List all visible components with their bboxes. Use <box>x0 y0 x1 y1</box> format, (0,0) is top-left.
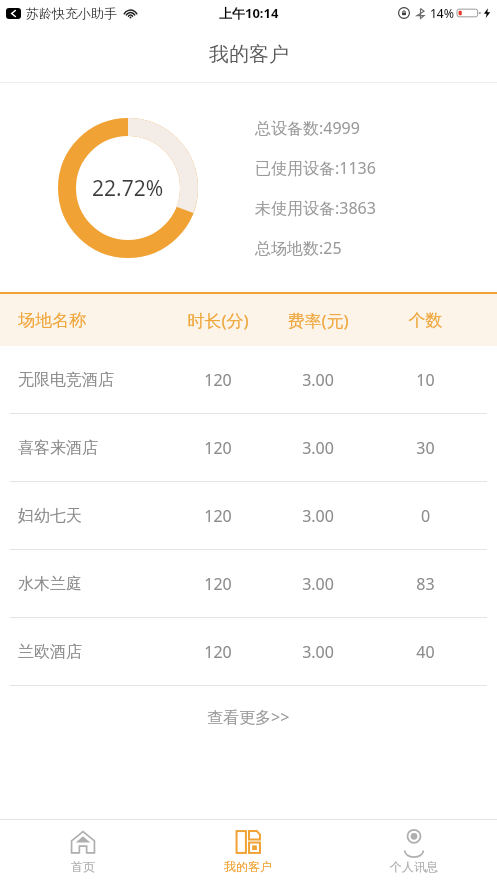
staticText: 喜客来酒店 <box>18 438 168 458</box>
button[interactable]: 兰欧酒店 <box>0 618 497 685</box>
button[interactable]: 查看更多>> <box>0 686 497 748</box>
staticText: 120 <box>168 369 268 391</box>
staticText: 时长(分) <box>168 309 268 332</box>
staticText: 未使用设备:3863 <box>255 197 376 219</box>
staticText: 妇幼七天 <box>18 506 168 526</box>
button[interactable]: 我的客户 <box>165 820 331 883</box>
staticText: 费率(元) <box>268 309 368 332</box>
button[interactable]: 首页 <box>0 820 165 883</box>
button[interactable]: 水木兰庭 <box>0 550 497 617</box>
staticText: 上午10:14 <box>219 4 279 22</box>
staticText: 我的客户 <box>209 42 289 67</box>
staticText: 场地名称 <box>18 310 168 331</box>
staticText: 120 <box>168 641 268 663</box>
button[interactable]: 喜客来酒店 <box>0 414 497 481</box>
staticText: 3.00 <box>268 505 368 527</box>
staticText: 兰欧酒店 <box>18 642 168 662</box>
staticText: 苏龄快充小助手 <box>26 5 117 21</box>
staticText: 水木兰庭 <box>18 574 168 594</box>
staticText: 我的客户 <box>224 859 272 874</box>
button[interactable]: 个人讯息 <box>331 820 497 883</box>
staticText: 总设备数:4999 <box>255 117 360 139</box>
staticText: 3.00 <box>268 369 368 391</box>
staticText: 120 <box>168 573 268 595</box>
staticText: 3.00 <box>268 573 368 595</box>
staticText: 40 <box>368 641 483 663</box>
staticText: 30 <box>368 437 483 459</box>
staticText: 个人讯息 <box>390 859 438 874</box>
staticText: 0 <box>368 505 483 527</box>
staticText: 120 <box>168 505 268 527</box>
staticText: 120 <box>168 437 268 459</box>
staticText: 首页 <box>71 859 95 874</box>
staticText: 查看更多>> <box>207 706 290 728</box>
staticText: 无限电竞酒店 <box>18 370 168 390</box>
staticText: 10 <box>368 369 483 391</box>
staticText: 个数 <box>368 310 483 331</box>
staticText: 22.72% <box>92 174 164 203</box>
button[interactable]: 妇幼七天 <box>0 482 497 549</box>
staticText: 3.00 <box>268 641 368 663</box>
staticText: 3.00 <box>268 437 368 459</box>
button[interactable]: 无限电竞酒店 <box>0 346 497 413</box>
staticText: 14% <box>430 5 454 21</box>
staticText: 83 <box>368 573 483 595</box>
staticText: 总场地数:25 <box>255 237 342 259</box>
staticText: 已使用设备:1136 <box>255 157 376 179</box>
